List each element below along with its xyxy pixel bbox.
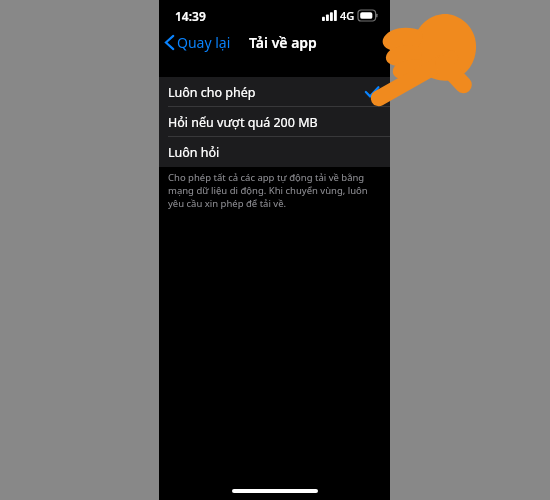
- button[interactable]: Quay lại: [159, 29, 239, 56]
- button[interactable]: Luôn cho phép: [159, 77, 390, 107]
- staticText: Cho phép tất cả các app tự động tải về b…: [168, 171, 376, 210]
- staticText: Luôn hỏi: [168, 144, 220, 161]
- staticText: Tải về app: [249, 33, 317, 52]
- staticText: Hỏi nếu vượt quá 200 MB: [168, 114, 318, 131]
- staticText: Luôn cho phép: [168, 84, 256, 101]
- staticText: 14:39: [175, 8, 206, 24]
- button[interactable]: Luôn hỏi: [159, 137, 390, 167]
- staticText: Quay lại: [177, 33, 231, 52]
- staticText: 4G: [340, 8, 355, 23]
- button[interactable]: Hỏi nếu vượt quá 200 MB: [159, 107, 390, 137]
